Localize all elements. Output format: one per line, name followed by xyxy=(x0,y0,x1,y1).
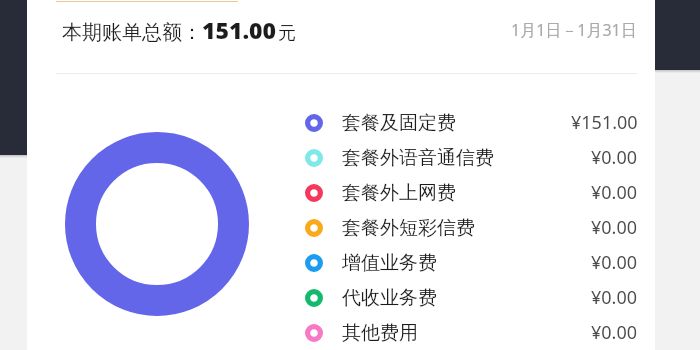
button[interactable]: 本期账单总额： xyxy=(62,14,296,45)
button[interactable]: 套餐及固定费 xyxy=(305,105,638,140)
staticText: ¥0.00 xyxy=(591,250,638,275)
staticText: 代收业务费 xyxy=(342,286,437,310)
button[interactable]: 增值业务费 xyxy=(305,245,638,280)
staticText: ¥0.00 xyxy=(591,215,638,240)
staticText: ¥0.00 xyxy=(591,180,638,205)
staticText: 套餐及固定费 xyxy=(342,111,456,135)
button[interactable]: 套餐外上网费 xyxy=(305,175,638,210)
button[interactable]: 套餐外短彩信费 xyxy=(305,210,638,245)
button[interactable]: 1月1日－1月31日 xyxy=(455,19,637,41)
button[interactable]: 代收业务费 xyxy=(305,280,638,315)
staticText: 其他费用 xyxy=(342,321,418,345)
staticText: ¥151.00 xyxy=(571,110,638,135)
staticText: 151.00 xyxy=(202,14,277,45)
staticText: ¥0.00 xyxy=(591,285,638,310)
button[interactable]: 套餐外语音通信费 xyxy=(305,140,638,175)
staticText: 套餐外短彩信费 xyxy=(342,216,475,240)
button[interactable]: 其他费用 xyxy=(305,315,638,350)
staticText: 增值业务费 xyxy=(342,251,437,275)
staticText: 本期账单总额： xyxy=(62,20,202,45)
staticText: 1月1日－1月31日 xyxy=(511,19,637,41)
staticText: 套餐外语音通信费 xyxy=(342,146,494,170)
staticText: 套餐外上网费 xyxy=(342,181,456,205)
staticText: 元 xyxy=(278,22,296,45)
staticText: ¥0.00 xyxy=(591,145,638,170)
staticText: ¥0.00 xyxy=(591,320,638,345)
other: 账单构成环形图 xyxy=(65,132,249,316)
